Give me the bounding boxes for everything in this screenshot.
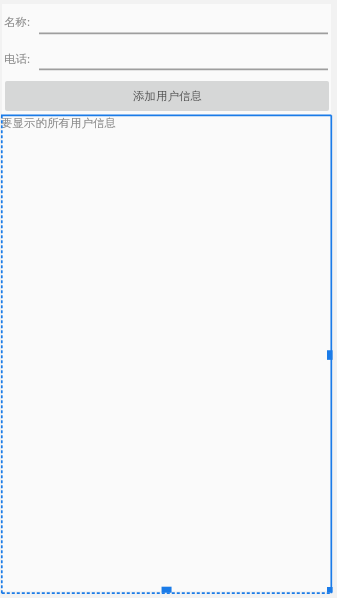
button[interactable]: 电话: — [0, 48, 337, 72]
button[interactable]: 添加用户信息 — [5, 81, 329, 111]
staticText: 名称: — [4, 14, 31, 30]
staticText: 添加用户信息 — [133, 89, 202, 103]
staticText: 要显示的所有用户信息 — [1, 116, 116, 130]
staticText: 电话: — [4, 51, 31, 67]
button[interactable]: 名称: — [0, 11, 337, 35]
button[interactable]: 要显示的所有用户信息 — [2, 115, 332, 593]
